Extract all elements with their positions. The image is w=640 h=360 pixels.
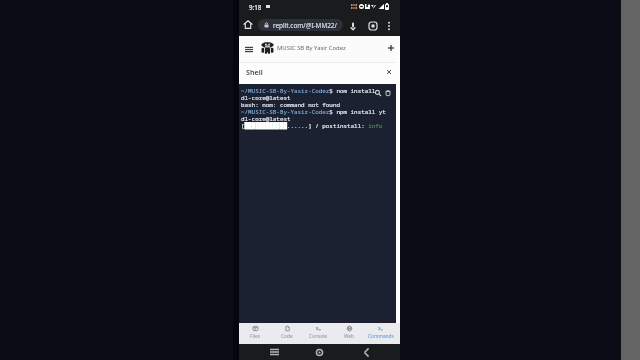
- button[interactable]: Menu: [241, 41, 257, 57]
- button[interactable]: Home: [241, 17, 255, 31]
- button[interactable]: More options: [382, 19, 396, 33]
- button[interactable]: Search: [373, 88, 382, 97]
- button[interactable]: Voice search: [346, 19, 360, 33]
- staticText: Commands: [368, 333, 394, 340]
- button[interactable]: Web: [334, 323, 365, 344]
- staticText: 9:18: [249, 3, 262, 11]
- staticText: dl-core@latest: [241, 94, 291, 102]
- button[interactable]: Clear console: [383, 88, 392, 97]
- staticText: [████████████......] / postinstall: info: [241, 122, 383, 130]
- staticText: bash: nom: command not found: [241, 101, 340, 109]
- staticText: Code: [281, 333, 293, 340]
- button[interactable]: Recent apps: [265, 346, 283, 358]
- button[interactable]: Back: [357, 346, 375, 359]
- button[interactable]: Close tab: [382, 65, 396, 79]
- staticText: replit.com/@I-MM22/: [273, 21, 337, 30]
- button[interactable]: Code: [271, 323, 303, 344]
- staticText: Files: [250, 333, 260, 340]
- button[interactable]: Commands: [365, 323, 396, 344]
- button[interactable]: Console: [303, 323, 334, 344]
- staticText: Web: [344, 333, 355, 340]
- staticText: Shell: [246, 67, 263, 77]
- staticText: ~/MUSIC-SB-By-Yasir-Codez$ nom install: [241, 87, 376, 95]
- button[interactable]: New tab: [383, 40, 399, 56]
- staticText: MUSIC SB By Yasir Codez: [277, 44, 346, 52]
- button[interactable]: Tabs: [366, 19, 380, 33]
- button[interactable]: Files: [239, 323, 271, 344]
- button[interactable]: Home: [310, 346, 328, 359]
- staticText: ~/MUSIC-SB-By-Yasir-Codez$ npm install y…: [241, 108, 386, 116]
- staticText: Console: [309, 333, 328, 340]
- staticText: dl-core@latest: [241, 115, 291, 123]
- button[interactable]: replit.com/@I-MM22/: [258, 19, 343, 31]
